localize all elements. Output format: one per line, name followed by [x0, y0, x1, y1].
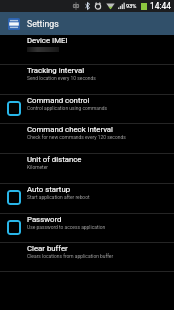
- staticText: Auto startup: [27, 185, 71, 194]
- staticText: Start application after reboot: [27, 194, 90, 200]
- staticText: Kilometer: [27, 164, 48, 170]
- button[interactable]: Device IMEI: [0, 35, 174, 64]
- staticText: Clears locations from application buffer: [27, 253, 114, 259]
- button[interactable]: Unit of distance: [0, 154, 174, 183]
- button[interactable]: Command check interval: [0, 124, 174, 153]
- button[interactable]: Password: [0, 214, 174, 242]
- staticText: Password: [27, 215, 62, 224]
- staticText: Device IMEI: [27, 36, 68, 45]
- staticText: Command check interval: [27, 125, 114, 134]
- staticText: Use password to access application: [27, 224, 106, 230]
- button[interactable]: Tracking interval: [0, 65, 174, 94]
- button[interactable]: Auto startup: [0, 184, 174, 213]
- button[interactable]: Clear buffer: [0, 243, 174, 271]
- staticText: Settings: [27, 19, 59, 29]
- staticText: Send location every 10 seconds: [27, 75, 96, 81]
- staticText: Tracking interval: [27, 66, 85, 75]
- staticText: Clear buffer: [27, 244, 68, 253]
- button[interactable]: Command control: [0, 95, 174, 123]
- staticText: 93%: [126, 3, 137, 10]
- staticText: Unit of distance: [27, 155, 82, 164]
- staticText: 14:44: [150, 1, 171, 11]
- staticText: Check for new commands every 120 seconds: [27, 134, 126, 140]
- staticText: Control application using commands: [27, 105, 107, 111]
- button[interactable]: Settings: [8, 12, 174, 35]
- staticText: Command control: [27, 96, 90, 105]
